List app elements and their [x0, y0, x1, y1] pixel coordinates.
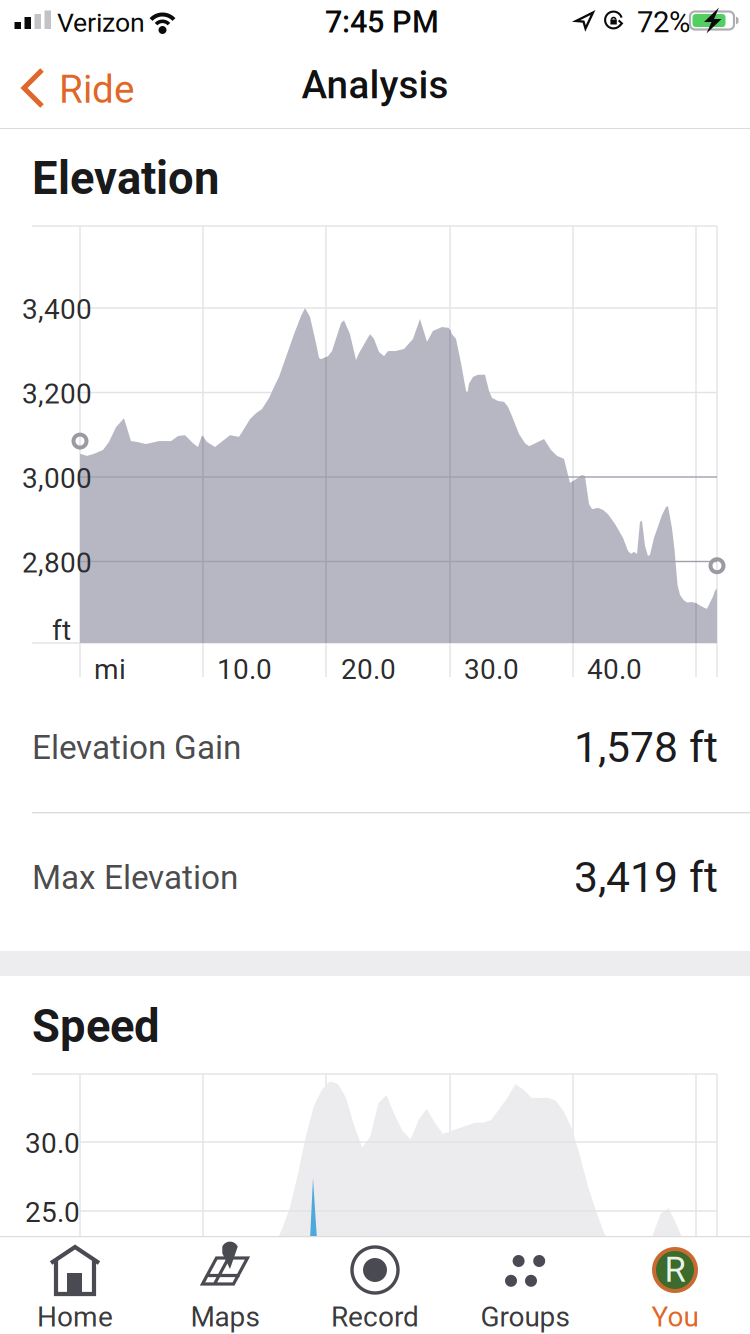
- staticText: You: [651, 1301, 698, 1333]
- button[interactable]: Home: [0, 1236, 150, 1334]
- button[interactable]: Ride: [0, 42, 150, 128]
- button[interactable]: Record: [300, 1236, 450, 1334]
- staticText: mi: [94, 653, 126, 686]
- staticText: 7:45 PM: [325, 4, 439, 40]
- staticText: 10.0: [217, 653, 272, 686]
- staticText: Speed: [32, 1000, 160, 1053]
- staticText: Max Elevation: [32, 858, 238, 897]
- staticText: Verizon: [57, 7, 145, 38]
- staticText: 30.0: [25, 1127, 80, 1160]
- staticText: 3,419 ft: [574, 852, 718, 902]
- staticText: 40.0: [587, 653, 642, 686]
- staticText: 3,400: [22, 293, 92, 326]
- staticText: Groups: [480, 1301, 569, 1333]
- staticText: 72%: [637, 5, 690, 39]
- button[interactable]: Maps: [150, 1236, 300, 1334]
- button[interactable]: R: [600, 1236, 750, 1334]
- button[interactable]: Elevation Gain: [32, 683, 718, 812]
- staticText: Elevation Gain: [32, 728, 241, 767]
- staticText: ft: [52, 614, 71, 647]
- staticText: Home: [37, 1301, 113, 1333]
- staticText: 30.0: [464, 653, 519, 686]
- button[interactable]: Max Elevation: [32, 813, 718, 942]
- staticText: Ride: [59, 67, 135, 112]
- staticText: R: [664, 1250, 685, 1290]
- staticText: 3,000: [22, 462, 92, 495]
- staticText: 20.0: [341, 653, 396, 686]
- staticText: 3,200: [22, 377, 92, 410]
- staticText: 25.0: [25, 1196, 80, 1229]
- staticText: 1,578 ft: [574, 722, 718, 772]
- staticText: Elevation: [32, 152, 219, 205]
- staticText: 2,800: [22, 546, 92, 579]
- staticText: Analysis: [301, 62, 448, 108]
- button[interactable]: Groups: [450, 1236, 600, 1334]
- staticText: Record: [331, 1301, 419, 1333]
- staticText: Maps: [190, 1301, 259, 1333]
